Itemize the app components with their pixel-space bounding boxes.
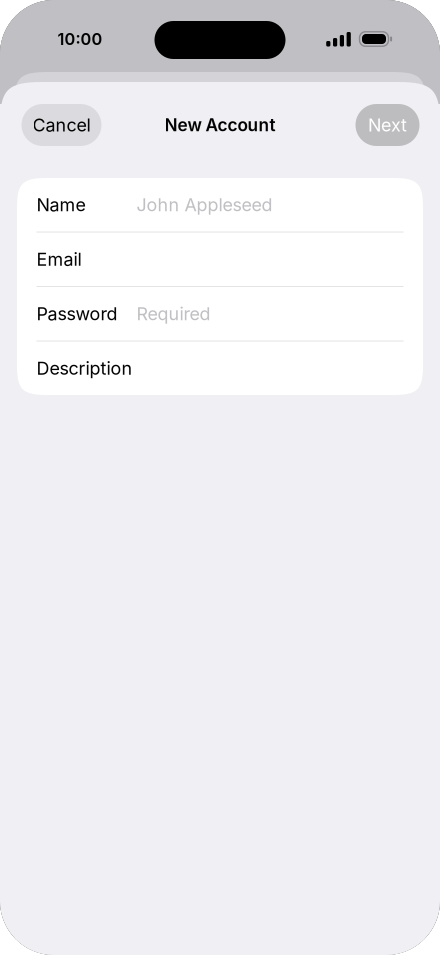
staticText: Required — [136, 303, 210, 324]
button[interactable]: Next — [355, 104, 419, 146]
staticText: Next — [368, 114, 407, 136]
staticText: Email — [36, 248, 81, 270]
staticText: Cancel — [32, 114, 90, 136]
button[interactable]: Password — [17, 287, 423, 340]
button[interactable]: Description — [17, 341, 423, 395]
staticText: Password — [36, 303, 117, 324]
staticText: 10:00 — [57, 29, 102, 49]
staticText: Name — [36, 194, 85, 215]
staticText: John Appleseed — [136, 194, 272, 215]
button[interactable]: Name — [17, 178, 423, 231]
staticText: Description — [36, 357, 132, 379]
staticText: New Account — [164, 115, 275, 135]
button[interactable]: Email — [17, 232, 423, 286]
button[interactable]: Cancel — [21, 104, 101, 146]
